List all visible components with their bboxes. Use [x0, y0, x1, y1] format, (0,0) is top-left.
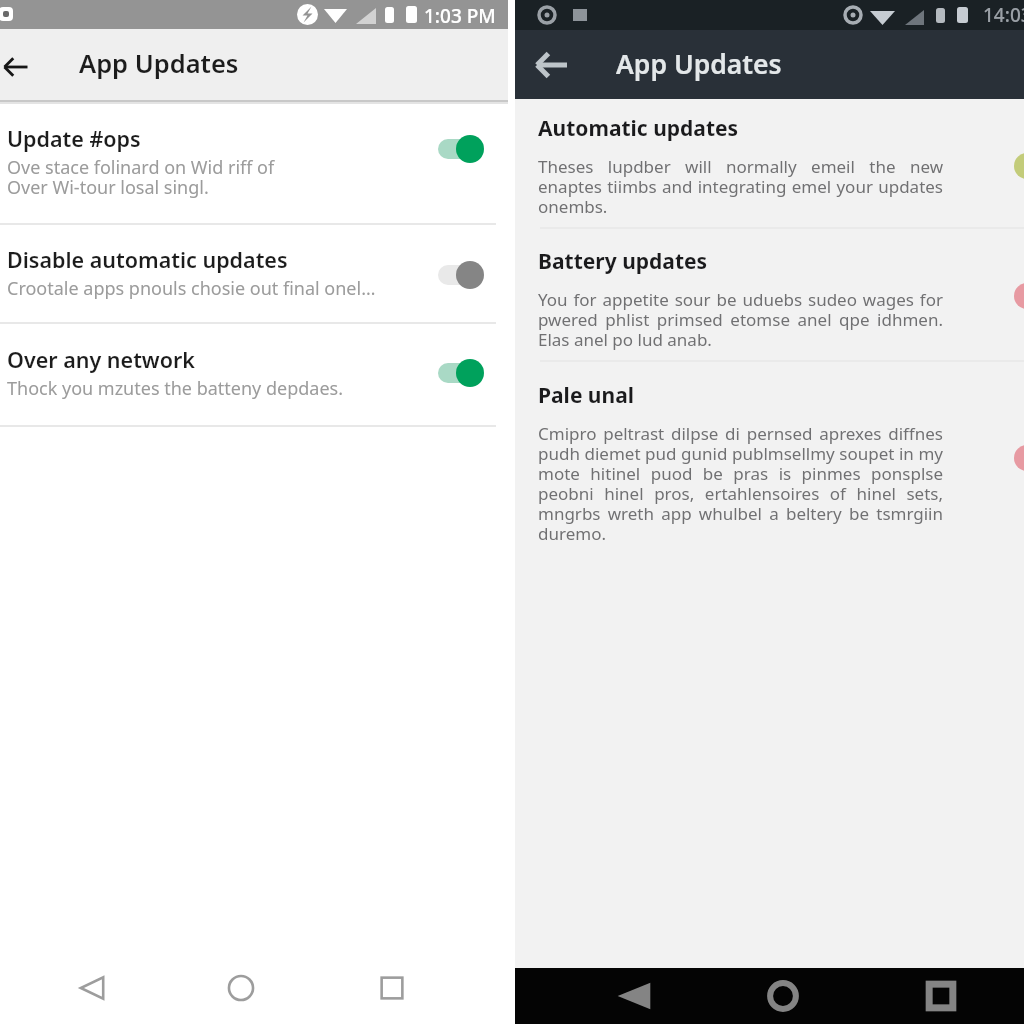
button[interactable]: Back — [0, 44, 39, 90]
button[interactable]: Home — [758, 971, 808, 1021]
button[interactable]: Home — [209, 956, 273, 1020]
button[interactable]: Recents — [360, 956, 424, 1020]
button[interactable]: Over any network — [0, 345, 508, 426]
button[interactable]: Pale unal — [515, 381, 1024, 545]
staticText: 1:03 PM — [424, 3, 496, 29]
button[interactable]: Toggle on — [426, 355, 486, 391]
button[interactable]: Back — [609, 971, 659, 1021]
staticText: Cmipro peltrast dilpse di pernsed aprexe… — [538, 422, 943, 545]
button[interactable]: Battery updates — [515, 247, 1024, 351]
staticText: Automatic updates — [538, 114, 739, 143]
staticText: App Updates — [79, 46, 239, 81]
staticText: Ove stace folinard on Wid riff of — [7, 155, 275, 180]
button[interactable]: Disable automatic updates — [0, 245, 508, 323]
button[interactable]: Toggle on — [426, 131, 486, 167]
staticText: Theses lupdber will normally emeil the n… — [538, 155, 943, 218]
staticText: Thock you mzutes the batteny depdaes. — [7, 376, 344, 401]
staticText: Crootale apps pnouls chosie out final on… — [7, 276, 376, 301]
staticText: App Updates — [616, 46, 782, 82]
staticText: Update #ops — [7, 124, 141, 153]
staticText: Battery updates — [538, 247, 708, 276]
staticText: Disable automatic updates — [7, 245, 288, 274]
staticText: 14:03 — [983, 2, 1024, 28]
button[interactable]: Update #ops — [0, 124, 508, 224]
button[interactable]: Back — [60, 956, 124, 1020]
staticText: Pale unal — [538, 381, 635, 410]
button[interactable]: Recents — [916, 971, 966, 1021]
staticText: You for appetite sour be uduebs sudeo wa… — [538, 288, 943, 351]
button[interactable]: Back — [532, 45, 572, 85]
button[interactable]: Automatic updates — [515, 114, 1024, 218]
staticText: Over Wi-tour losal singl. — [7, 175, 209, 200]
button[interactable]: Toggle off — [426, 257, 486, 293]
staticText: Over any network — [7, 345, 195, 374]
